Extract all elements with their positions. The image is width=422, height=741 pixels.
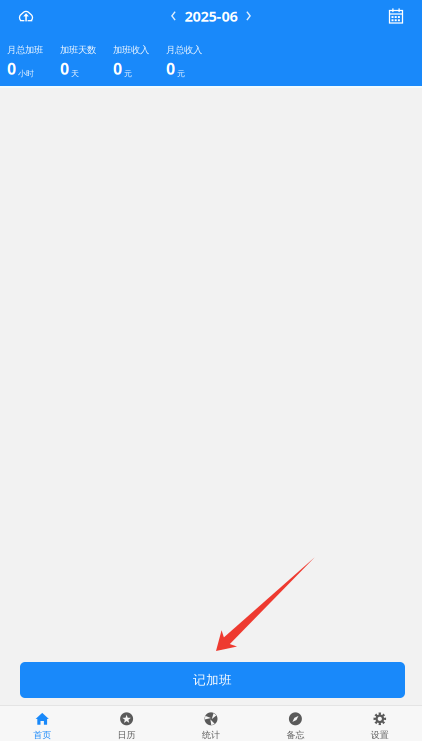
staticText: 0 [113,58,122,80]
staticText: 小时 [18,68,34,79]
staticText: 统计 [202,729,220,741]
staticText: 月总收入 [166,44,202,56]
staticText: 备忘 [286,729,304,741]
staticText: 0 [60,58,69,80]
staticText: 月总加班 [7,44,43,56]
staticText: 天 [71,68,79,79]
button[interactable]: 备忘 [253,704,338,741]
staticText: 设置 [371,729,389,741]
staticText: 0 [7,58,16,80]
staticText: 日历 [118,729,136,741]
button[interactable]: Previous month [162,4,184,28]
button[interactable]: 设置 [338,704,422,741]
staticText: 加班天数 [60,44,96,56]
button[interactable]: 记加班 [20,662,405,698]
staticText: 0 [166,58,175,80]
staticText: 2025-06 [184,6,237,26]
staticText: 元 [177,68,185,79]
button[interactable]: 统计 [169,704,253,741]
button[interactable]: Sync [4,1,48,31]
staticText: 加班收入 [113,44,149,56]
button[interactable]: 日历 [84,704,169,741]
staticText: 记加班 [193,672,232,688]
staticText: 元 [124,68,132,79]
button[interactable]: Next month [237,4,259,28]
button[interactable]: 首页 [0,704,84,741]
button[interactable]: Calendar [374,1,418,31]
staticText: 首页 [33,729,51,741]
